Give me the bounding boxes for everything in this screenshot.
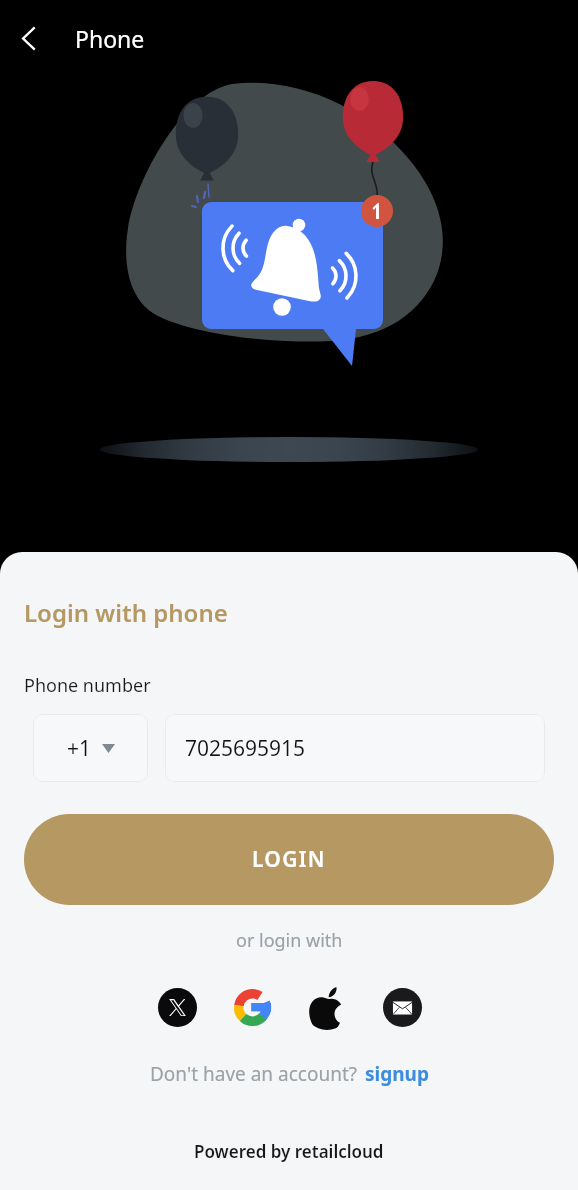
button[interactable]: Sign in with Google — [229, 984, 275, 1030]
staticText: Powered by retailcloud — [194, 1140, 384, 1163]
staticText: LOGIN — [252, 845, 326, 874]
staticText: +1 — [67, 734, 92, 763]
button[interactable]: Sign in with Apple — [304, 984, 350, 1030]
staticText: or login with — [236, 928, 343, 953]
staticText: signup — [365, 1061, 429, 1087]
button[interactable]: Back — [5, 15, 51, 61]
button[interactable]: LOGIN — [24, 814, 554, 905]
button[interactable]: Sign in with X — [154, 984, 200, 1030]
staticText: 7025695915 — [185, 734, 306, 763]
staticText: Phone number — [24, 673, 151, 698]
button[interactable]: Sign in with email — [379, 984, 425, 1030]
button[interactable]: Don't have an account? — [0, 1061, 578, 1087]
button[interactable]: 7025695915 — [165, 714, 545, 782]
staticText: Don't have an account? — [150, 1061, 358, 1087]
button[interactable]: +1 — [33, 714, 148, 782]
staticText: Login with phone — [24, 596, 228, 629]
staticText: Phone — [75, 23, 145, 54]
